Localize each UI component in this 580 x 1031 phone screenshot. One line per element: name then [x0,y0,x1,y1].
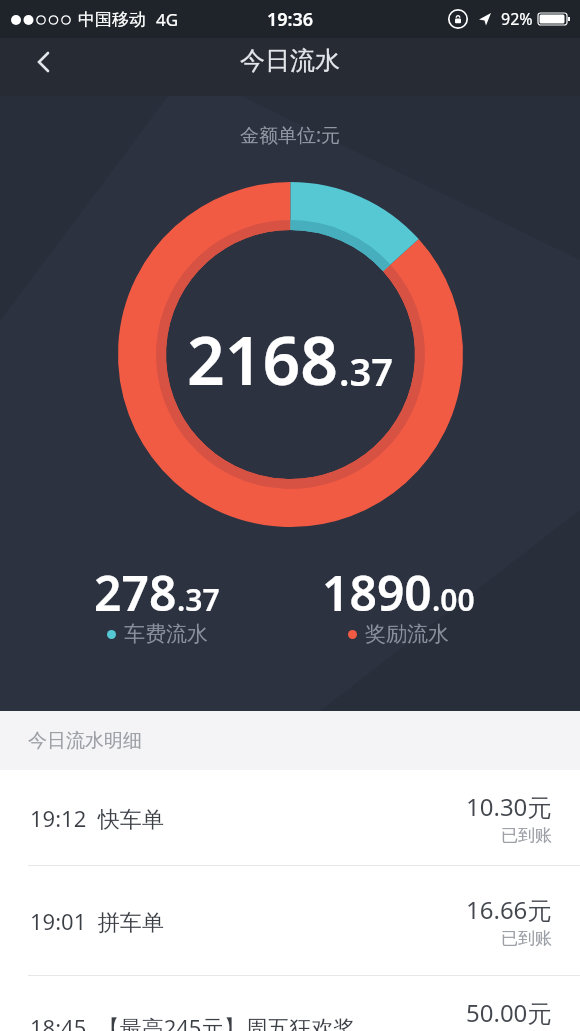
button[interactable]: 18:45 【最高245元】周五狂欢奖 [0,976,580,1031]
staticText: 今日流水明细 [28,729,142,753]
staticText: .00 [432,579,475,620]
staticText: 19:12 快车单 [30,803,164,833]
staticText: 车费流水 [124,621,208,647]
staticText: 19:36 [267,7,314,32]
staticText: 奖励流水 [365,621,449,647]
staticText: 16.66元 [466,893,552,926]
staticText: 19:01 拼车单 [30,906,164,936]
staticText: 1890 [322,560,432,625]
staticText: 92% [501,8,533,30]
staticText: 今日流水 [240,45,340,76]
staticText: 4G [156,8,179,31]
button[interactable]: 19:12 快车单 [0,770,580,865]
staticText: .37 [177,579,220,620]
button[interactable] [0,33,60,91]
staticText: .37 [339,345,393,397]
staticText: 已到账 [501,928,552,949]
button[interactable]: 19:01 拼车单 [0,866,580,975]
staticText: 18:45 【最高245元】周五狂欢奖 [30,1012,356,1031]
staticText: 50.00元 [466,996,552,1029]
staticText: 中国移动 [78,9,146,30]
staticText: 已到账 [501,825,552,846]
staticText: 10.30元 [466,790,552,823]
staticText: 2168 [187,314,339,404]
staticText: 278 [94,560,177,625]
staticText: 金额单位:元 [240,122,341,148]
